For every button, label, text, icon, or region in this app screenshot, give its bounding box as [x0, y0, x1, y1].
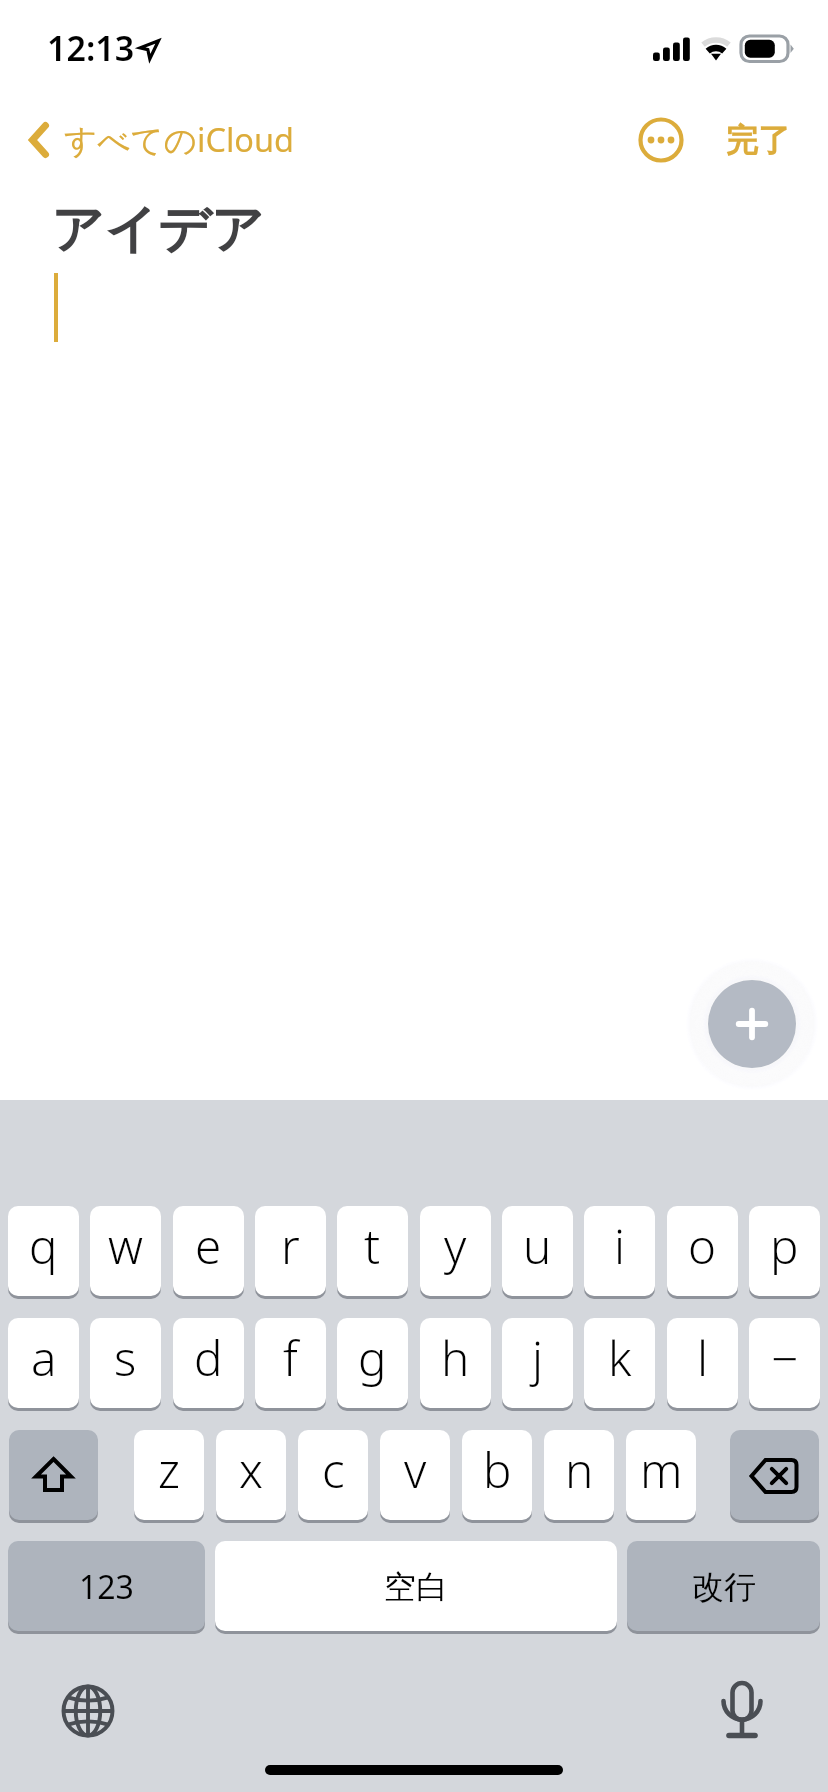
button[interactable]: l [667, 1318, 738, 1408]
staticText: 完了 [726, 120, 790, 160]
staticText: 123 [79, 1565, 134, 1609]
staticText: w [108, 1213, 143, 1278]
staticText: l [697, 1325, 709, 1390]
staticText: h [441, 1325, 470, 1390]
staticText: アイデア [51, 197, 264, 263]
button[interactable]: r [255, 1206, 326, 1296]
staticText: m [640, 1437, 683, 1502]
staticText: g [358, 1325, 387, 1390]
button[interactable]: u [502, 1206, 573, 1296]
button[interactable]: 完了 [726, 120, 790, 160]
button[interactable]: Note body [0, 186, 828, 1100]
button[interactable]: 改行 [627, 1541, 820, 1631]
button[interactable]: t [337, 1206, 408, 1296]
staticText: v [404, 1437, 427, 1502]
button[interactable]: j [502, 1318, 573, 1408]
staticText: − [771, 1325, 799, 1390]
button[interactable]: a [8, 1318, 79, 1408]
button[interactable]: s [90, 1318, 161, 1408]
button[interactable]: 123 [8, 1541, 205, 1631]
button[interactable]: m [626, 1430, 696, 1520]
button[interactable]: v [380, 1430, 450, 1520]
staticText: i [614, 1213, 626, 1278]
staticText: k [608, 1325, 632, 1390]
button[interactable]: g [337, 1318, 408, 1408]
button[interactable]: h [420, 1318, 491, 1408]
staticText: すべてのiCloud [64, 117, 295, 161]
staticText: z [158, 1437, 180, 1502]
staticText: d [194, 1325, 223, 1390]
button[interactable]: Backspace [730, 1430, 819, 1520]
button[interactable]: z [134, 1430, 204, 1520]
staticText: u [523, 1213, 552, 1278]
staticText: 空白 [384, 1567, 448, 1607]
staticText: e [195, 1213, 222, 1278]
staticText: y [444, 1213, 467, 1278]
button[interactable]: n [544, 1430, 614, 1520]
button[interactable]: 空白 [215, 1541, 617, 1631]
staticText: 改行 [692, 1567, 756, 1607]
button[interactable]: w [90, 1206, 161, 1296]
button[interactable]: y [420, 1206, 491, 1296]
button[interactable]: Add attachment [708, 980, 796, 1068]
button[interactable]: x [216, 1430, 286, 1520]
button[interactable]: f [255, 1318, 326, 1408]
button[interactable]: Next keyboard [61, 1684, 115, 1738]
button[interactable]: c [298, 1430, 368, 1520]
staticText: s [114, 1325, 137, 1390]
button[interactable]: すべてのiCloud [23, 94, 295, 186]
button[interactable]: q [8, 1206, 79, 1296]
button[interactable]: d [173, 1318, 244, 1408]
button[interactable]: Dictation [715, 1682, 769, 1736]
staticText: 12:13 [47, 25, 135, 71]
button[interactable]: o [667, 1206, 738, 1296]
button[interactable]: p [749, 1206, 820, 1296]
staticText: x [239, 1437, 263, 1502]
button[interactable]: More options [637, 116, 685, 164]
staticText: f [283, 1325, 298, 1390]
staticText: j [532, 1325, 544, 1390]
button[interactable]: e [173, 1206, 244, 1296]
button[interactable]: b [462, 1430, 532, 1520]
staticText: b [483, 1437, 512, 1502]
staticText: o [688, 1213, 717, 1278]
button[interactable]: − [749, 1318, 820, 1408]
button[interactable]: k [584, 1318, 655, 1408]
button[interactable]: Shift [9, 1430, 98, 1520]
staticText: a [31, 1325, 57, 1390]
staticText: t [364, 1213, 381, 1278]
button[interactable]: i [584, 1206, 655, 1296]
staticText: p [770, 1213, 799, 1278]
staticText: r [281, 1213, 300, 1278]
staticText: q [29, 1213, 58, 1278]
staticText: c [322, 1437, 345, 1502]
staticText: n [565, 1437, 594, 1502]
